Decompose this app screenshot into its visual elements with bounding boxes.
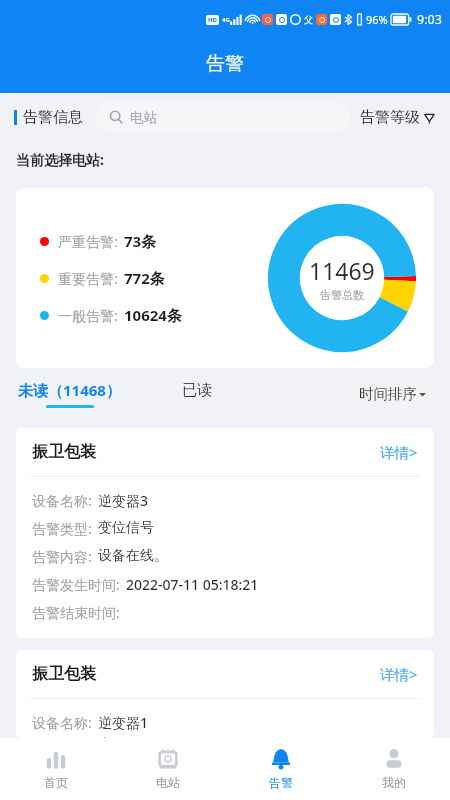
staticText: 时间排序	[359, 385, 417, 403]
button[interactable]: 时间排序	[349, 380, 436, 408]
staticText: HD	[208, 16, 217, 24]
other: 我的	[383, 748, 405, 770]
staticText: 96%	[366, 12, 388, 27]
button[interactable]: 首页	[0, 738, 112, 800]
staticText: 电站	[130, 109, 157, 126]
button[interactable]: 已读	[171, 381, 223, 408]
staticText: 严重告警:	[58, 232, 118, 251]
button[interactable]: 电站	[112, 738, 224, 800]
staticText: 11469	[309, 255, 375, 286]
staticText: 设备名称:	[32, 713, 92, 732]
other: 告警	[270, 748, 292, 770]
staticText: 2022-07-11 05:18:21	[126, 575, 259, 594]
other: Filter	[424, 112, 436, 124]
staticText: 9:03	[417, 11, 442, 28]
other: Search	[109, 110, 123, 124]
button[interactable]: Search	[95, 102, 350, 132]
staticText: 告警	[269, 775, 293, 790]
staticText: 73条	[124, 231, 157, 251]
staticText: 772条	[124, 268, 165, 288]
staticText: 告警	[206, 52, 244, 76]
button[interactable]: 未读（11468）	[16, 380, 123, 408]
staticText: 10624条	[124, 305, 182, 325]
staticText: 变位信号	[98, 519, 154, 537]
staticText: 未读（11468）	[18, 380, 121, 400]
button[interactable]: 告警	[224, 738, 337, 800]
staticText: 设备名称:	[32, 491, 92, 510]
staticText: 详情>	[380, 664, 418, 684]
staticText: 我的	[382, 775, 406, 790]
staticText: 告警发生时间:	[32, 575, 120, 594]
button[interactable]: 振卫包装	[16, 650, 434, 738]
staticText: 告警等级	[360, 108, 420, 127]
staticText: 告警总数	[320, 288, 364, 302]
button[interactable]: 我的	[337, 738, 450, 800]
staticText: 重要告警:	[58, 269, 118, 288]
staticText: 当前选择电站:	[16, 150, 104, 169]
staticText: 设备在线。	[98, 547, 168, 565]
staticText: 首页	[44, 775, 68, 790]
button[interactable]: 振卫包装	[16, 428, 434, 638]
staticText: 告警类型:	[32, 519, 92, 538]
staticText: 振卫包装	[32, 664, 96, 684]
staticText: 一般告警:	[58, 306, 118, 325]
staticText: 逆变器3	[98, 491, 149, 510]
staticText: 详情>	[380, 442, 418, 462]
other: 电站	[157, 748, 179, 770]
staticText: 已读	[182, 381, 212, 400]
staticText: 4G	[222, 16, 230, 24]
other: 首页	[45, 748, 67, 770]
staticText: 告警内容:	[32, 547, 92, 566]
staticText: 电站	[156, 775, 180, 790]
staticText: 告警信息	[23, 108, 83, 127]
button[interactable]: 告警信息	[14, 108, 83, 127]
button[interactable]: 告警等级	[360, 108, 436, 127]
staticText: 告警结束时间:	[32, 603, 120, 622]
staticText: 振卫包装	[32, 442, 96, 462]
staticText: 逆变器1	[98, 713, 149, 732]
staticText: 变位信号	[98, 736, 154, 738]
staticText: 父	[304, 14, 313, 25]
